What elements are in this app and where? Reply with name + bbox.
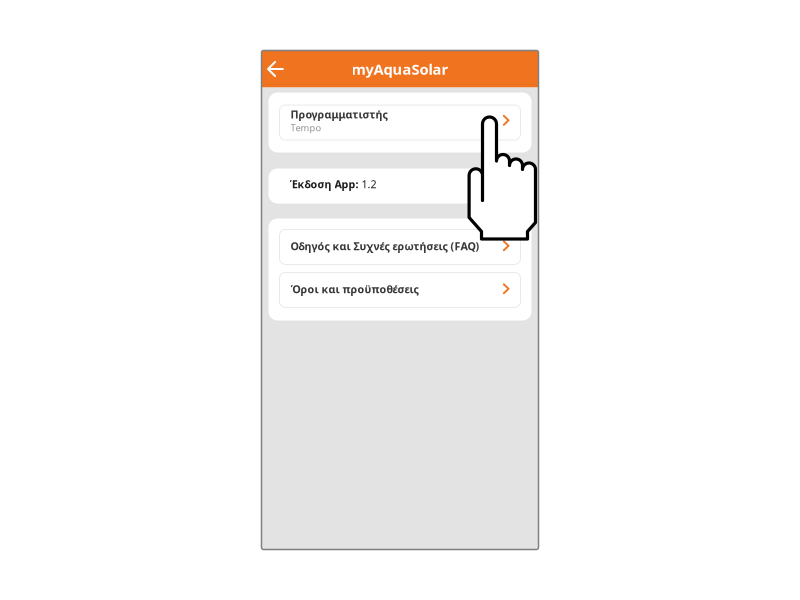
button[interactable]: Προγραμματιστής bbox=[279, 105, 520, 140]
staticText: Όροι και προϋποθέσεις bbox=[290, 282, 418, 296]
staticText: Προγραμματιστής bbox=[290, 107, 387, 121]
button[interactable]: Όροι και προϋποθέσεις bbox=[279, 272, 520, 307]
button[interactable]: Back bbox=[261, 51, 283, 86]
staticText: Οδηγός και Συχνές ερωτήσεις (FAQ) bbox=[290, 239, 479, 253]
staticText: myAquaSolar bbox=[351, 59, 448, 79]
staticText: Tempo bbox=[290, 121, 321, 134]
button[interactable]: Οδηγός και Συχνές ερωτήσεις (FAQ) bbox=[279, 229, 520, 264]
staticText: 1.2 bbox=[361, 177, 376, 191]
staticText: Έκδοση App: bbox=[289, 177, 361, 191]
